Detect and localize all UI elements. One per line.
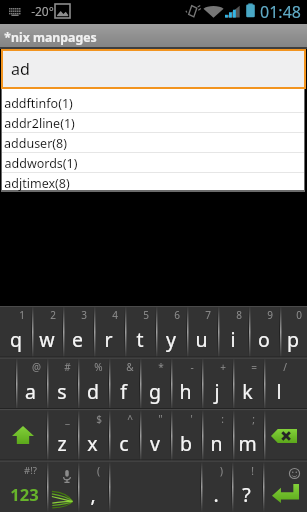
staticText: adduser(8)	[4, 135, 67, 152]
staticText: ad	[11, 58, 30, 80]
button[interactable]: ^	[108, 410, 139, 462]
staticText: q	[10, 326, 22, 353]
staticText: =	[251, 360, 257, 374]
button[interactable]: *	[139, 358, 170, 410]
button[interactable]: @	[15, 358, 46, 410]
button[interactable]: (	[77, 462, 108, 512]
button[interactable]: &	[108, 358, 139, 410]
button[interactable]: ad	[0, 47, 307, 89]
button[interactable]: Enter	[262, 462, 307, 512]
button[interactable]: 5	[124, 306, 155, 358]
staticText: !	[251, 464, 254, 478]
staticText: z	[57, 430, 67, 457]
staticText: addr2line(1)	[4, 115, 75, 132]
staticText: h	[179, 378, 192, 405]
staticText: 2	[50, 308, 56, 322]
staticText: adjtimex(8)	[4, 175, 70, 192]
staticText: 6	[174, 308, 180, 322]
staticText: f	[120, 378, 127, 405]
staticText: :	[221, 412, 224, 426]
staticText: m	[238, 430, 257, 457]
staticText: 8	[236, 308, 242, 322]
staticText: 0	[296, 308, 302, 322]
staticText: ^	[127, 412, 133, 426]
button[interactable]: Voice input	[46, 462, 77, 512]
staticText: y	[166, 326, 176, 353]
staticText: 1	[19, 308, 25, 322]
staticText: ?	[242, 481, 251, 508]
button[interactable]: +	[201, 358, 232, 410]
button[interactable]: _	[46, 410, 77, 462]
button[interactable]: 2	[31, 306, 62, 358]
button[interactable]: %	[77, 358, 108, 410]
staticText: o	[258, 326, 270, 353]
button[interactable]: adjtimex(8)	[2, 173, 304, 193]
button[interactable]: :	[201, 410, 232, 462]
staticText: _	[65, 412, 70, 426]
staticText: c	[119, 430, 129, 457]
button[interactable]: #!?	[0, 462, 46, 512]
button[interactable]: 9	[248, 306, 279, 358]
staticText: k	[242, 378, 253, 405]
staticText: '	[190, 412, 193, 426]
staticText: e	[72, 326, 83, 353]
button[interactable]: Space	[108, 462, 200, 512]
button[interactable]: addr2line(1)	[2, 113, 304, 133]
staticText: r	[104, 326, 113, 353]
staticText: #	[64, 360, 71, 374]
button[interactable]: /	[263, 358, 294, 410]
staticText: 5	[143, 308, 149, 322]
staticText: )	[220, 464, 223, 478]
staticText: "	[158, 412, 163, 426]
button[interactable]: -	[170, 358, 201, 410]
staticText: @	[32, 360, 41, 374]
staticText: 01:48	[260, 1, 301, 23]
button[interactable]: $	[77, 410, 108, 462]
staticText: v	[150, 430, 160, 457]
staticText: -20°	[31, 3, 54, 19]
staticText: j	[214, 378, 220, 405]
staticText: b	[180, 430, 192, 457]
button[interactable]: ;	[232, 410, 263, 462]
staticText: .	[213, 481, 219, 508]
staticText: (	[97, 464, 100, 478]
staticText: 9	[267, 308, 273, 322]
button[interactable]: Shift	[0, 410, 46, 462]
staticText: ,	[90, 481, 96, 508]
staticText: 3	[81, 308, 87, 322]
staticText: t	[136, 326, 144, 353]
staticText: s	[57, 378, 67, 405]
button[interactable]: addftinfo(1)	[2, 93, 304, 113]
button[interactable]: =	[232, 358, 263, 410]
staticText: +	[220, 360, 226, 374]
button[interactable]: !	[231, 462, 262, 512]
staticText: n	[210, 430, 223, 457]
button[interactable]: addwords(1)	[2, 153, 304, 173]
button[interactable]: adduser(8)	[2, 133, 304, 153]
staticText: w	[39, 326, 55, 353]
button[interactable]: 7	[186, 306, 217, 358]
staticText: i	[230, 326, 236, 353]
button[interactable]: 6	[155, 306, 186, 358]
button[interactable]: 4	[93, 306, 124, 358]
button[interactable]: '	[170, 410, 201, 462]
button[interactable]: 0	[279, 306, 307, 358]
button[interactable]: 8	[217, 306, 248, 358]
button[interactable]: Backspace	[263, 410, 307, 462]
staticText: ;	[252, 412, 255, 426]
button[interactable]: 3	[62, 306, 93, 358]
staticText: 7	[205, 308, 211, 322]
staticText: l	[276, 378, 282, 405]
staticText: a	[25, 378, 36, 405]
staticText: d	[87, 378, 99, 405]
staticText: *	[158, 360, 164, 374]
staticText: *nix manpages	[4, 29, 97, 46]
staticText: 4	[112, 308, 118, 322]
staticText: #!?	[24, 464, 37, 477]
button[interactable]: #	[46, 358, 77, 410]
button[interactable]: "	[139, 410, 170, 462]
staticText: p	[287, 326, 299, 353]
button[interactable]: )	[200, 462, 231, 512]
button[interactable]: 1	[0, 306, 31, 358]
staticText: 123	[10, 483, 39, 505]
